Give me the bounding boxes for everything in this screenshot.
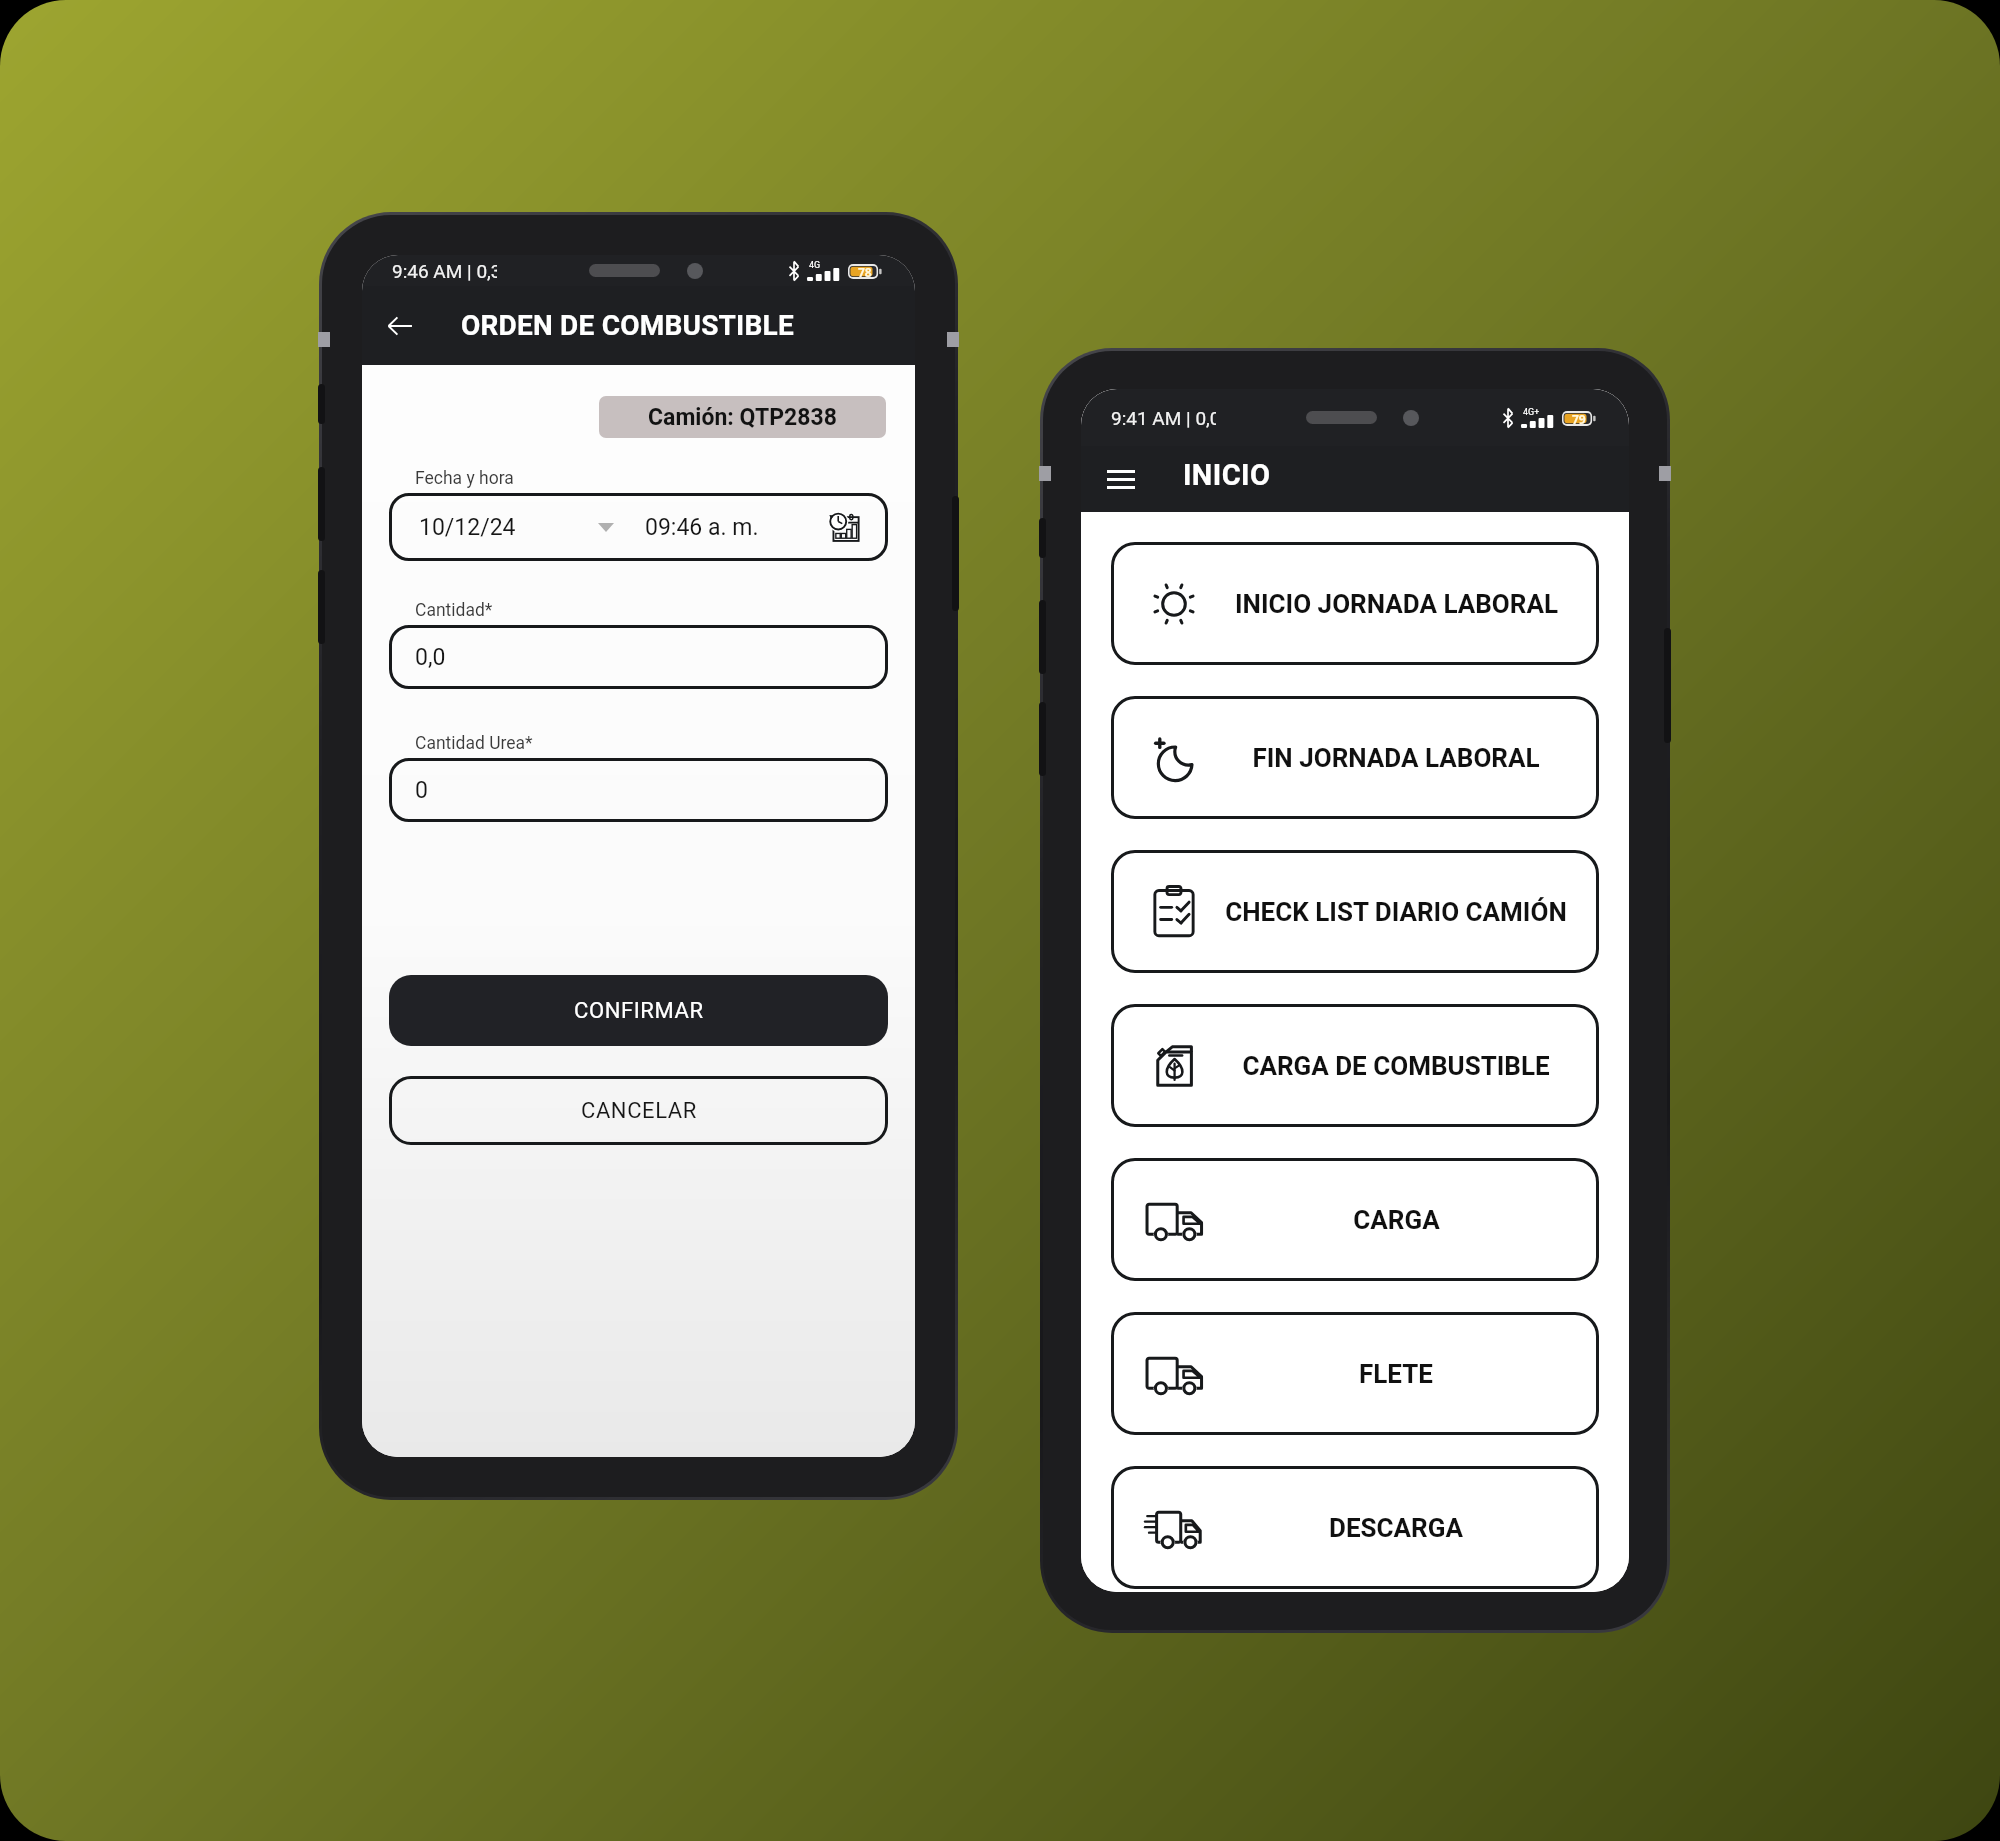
staticText: CARGA DE COMBUSTIBLE (1242, 1051, 1550, 1081)
staticText: Cantidad Urea* (415, 733, 533, 754)
staticText: ORDEN DE COMBUSTIBLE (461, 309, 794, 342)
button[interactable]: INICIO JORNADA LABORAL (1111, 542, 1599, 665)
staticText: 10/12/24 (419, 514, 516, 541)
staticText: CONFIRMAR (574, 998, 704, 1024)
staticText: 78 (858, 264, 872, 280)
staticText: 09:46 a. m. (645, 514, 759, 541)
staticText: FLETE (1359, 1359, 1433, 1389)
staticText: Cantidad* (415, 600, 493, 621)
button[interactable]: Pick date and time (827, 510, 861, 544)
staticText: CANCELAR (581, 1098, 697, 1124)
staticText: INICIO JORNADA LABORAL (1235, 589, 1558, 619)
staticText: 4G+ (1523, 407, 1540, 418)
button[interactable]: 0,0 (389, 625, 888, 689)
button[interactable]: FIN JORNADA LABORAL (1111, 696, 1599, 819)
staticText: CARGA (1353, 1205, 1440, 1235)
staticText: 4G (809, 260, 821, 271)
button[interactable]: CONFIRMAR (389, 975, 888, 1046)
staticText: 9:46 AM | 0,3 (392, 260, 497, 282)
button[interactable]: 0 (389, 758, 888, 822)
button[interactable]: CHECK LIST DIARIO CAMIÓN (1111, 850, 1599, 973)
staticText: 0 (415, 777, 428, 804)
button[interactable]: CARGA (1111, 1158, 1599, 1281)
staticText: FIN JORNADA LABORAL (1252, 743, 1540, 773)
staticText: 9:41 AM | 0,0 (1111, 407, 1216, 429)
staticText: 79 (1572, 411, 1586, 427)
staticText: 0,0 (415, 644, 446, 671)
button[interactable]: CARGA DE COMBUSTIBLE (1111, 1004, 1599, 1127)
button[interactable]: FLETE (1111, 1312, 1599, 1435)
staticText: Fecha y hora (415, 468, 514, 489)
button[interactable]: CANCELAR (389, 1076, 888, 1145)
button[interactable]: 10/12/24 (389, 493, 888, 561)
button[interactable]: Open navigation menu (1098, 457, 1143, 502)
button[interactable]: Back (376, 302, 424, 350)
staticText: Camión: QTP2838 (648, 404, 837, 431)
button[interactable]: Camión: QTP2838 (599, 396, 886, 438)
staticText: DESCARGA (1329, 1513, 1463, 1543)
staticText: INICIO (1183, 458, 1271, 492)
button[interactable]: DESCARGA (1111, 1466, 1599, 1589)
staticText: CHECK LIST DIARIO CAMIÓN (1225, 897, 1567, 927)
